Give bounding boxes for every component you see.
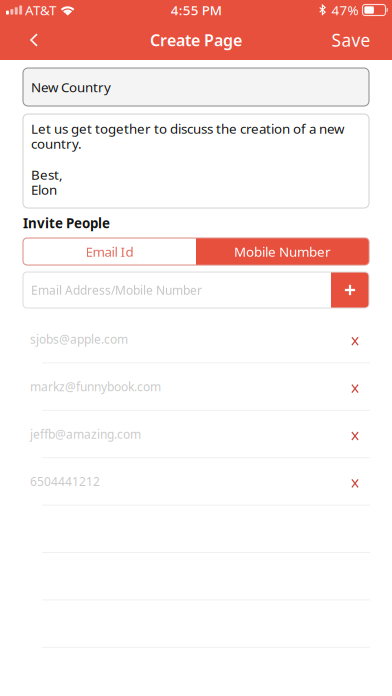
staticText: Email Id <box>85 243 133 260</box>
staticText: markz@funnybook.com <box>30 379 161 394</box>
staticText: 4:55 PM <box>171 1 222 19</box>
button[interactable]: Mobile Number <box>196 238 369 265</box>
staticText: Create Page <box>150 29 242 51</box>
button[interactable]: Save <box>329 20 373 60</box>
staticText: sjobs@apple.com <box>30 331 128 347</box>
button[interactable]: markz@funnybook.com <box>0 363 392 410</box>
staticText: Best, <box>31 166 63 183</box>
staticText: Invite People <box>23 214 110 232</box>
staticText: Let us get together to discuss the creat… <box>31 120 344 137</box>
staticText: 6504441212 <box>30 473 100 489</box>
staticText: Email Address/Mobile Number <box>31 282 202 298</box>
button[interactable]: 6504441212 <box>0 458 392 505</box>
staticText: country. <box>31 135 82 152</box>
staticText: AT&T <box>25 1 56 19</box>
staticText: 47% <box>331 1 358 19</box>
staticText: Save <box>331 28 370 51</box>
staticText: jeffb@amazing.com <box>30 426 141 442</box>
button[interactable]: Email Id <box>23 238 196 265</box>
staticText: Elon <box>31 181 57 198</box>
button[interactable]: jeffb@amazing.com <box>0 411 392 457</box>
button[interactable]: Add <box>331 272 369 308</box>
staticText: New Country <box>31 78 111 96</box>
button[interactable]: Back <box>12 20 56 60</box>
staticText: Mobile Number <box>234 243 331 260</box>
button[interactable]: sjobs@apple.com <box>0 316 392 362</box>
